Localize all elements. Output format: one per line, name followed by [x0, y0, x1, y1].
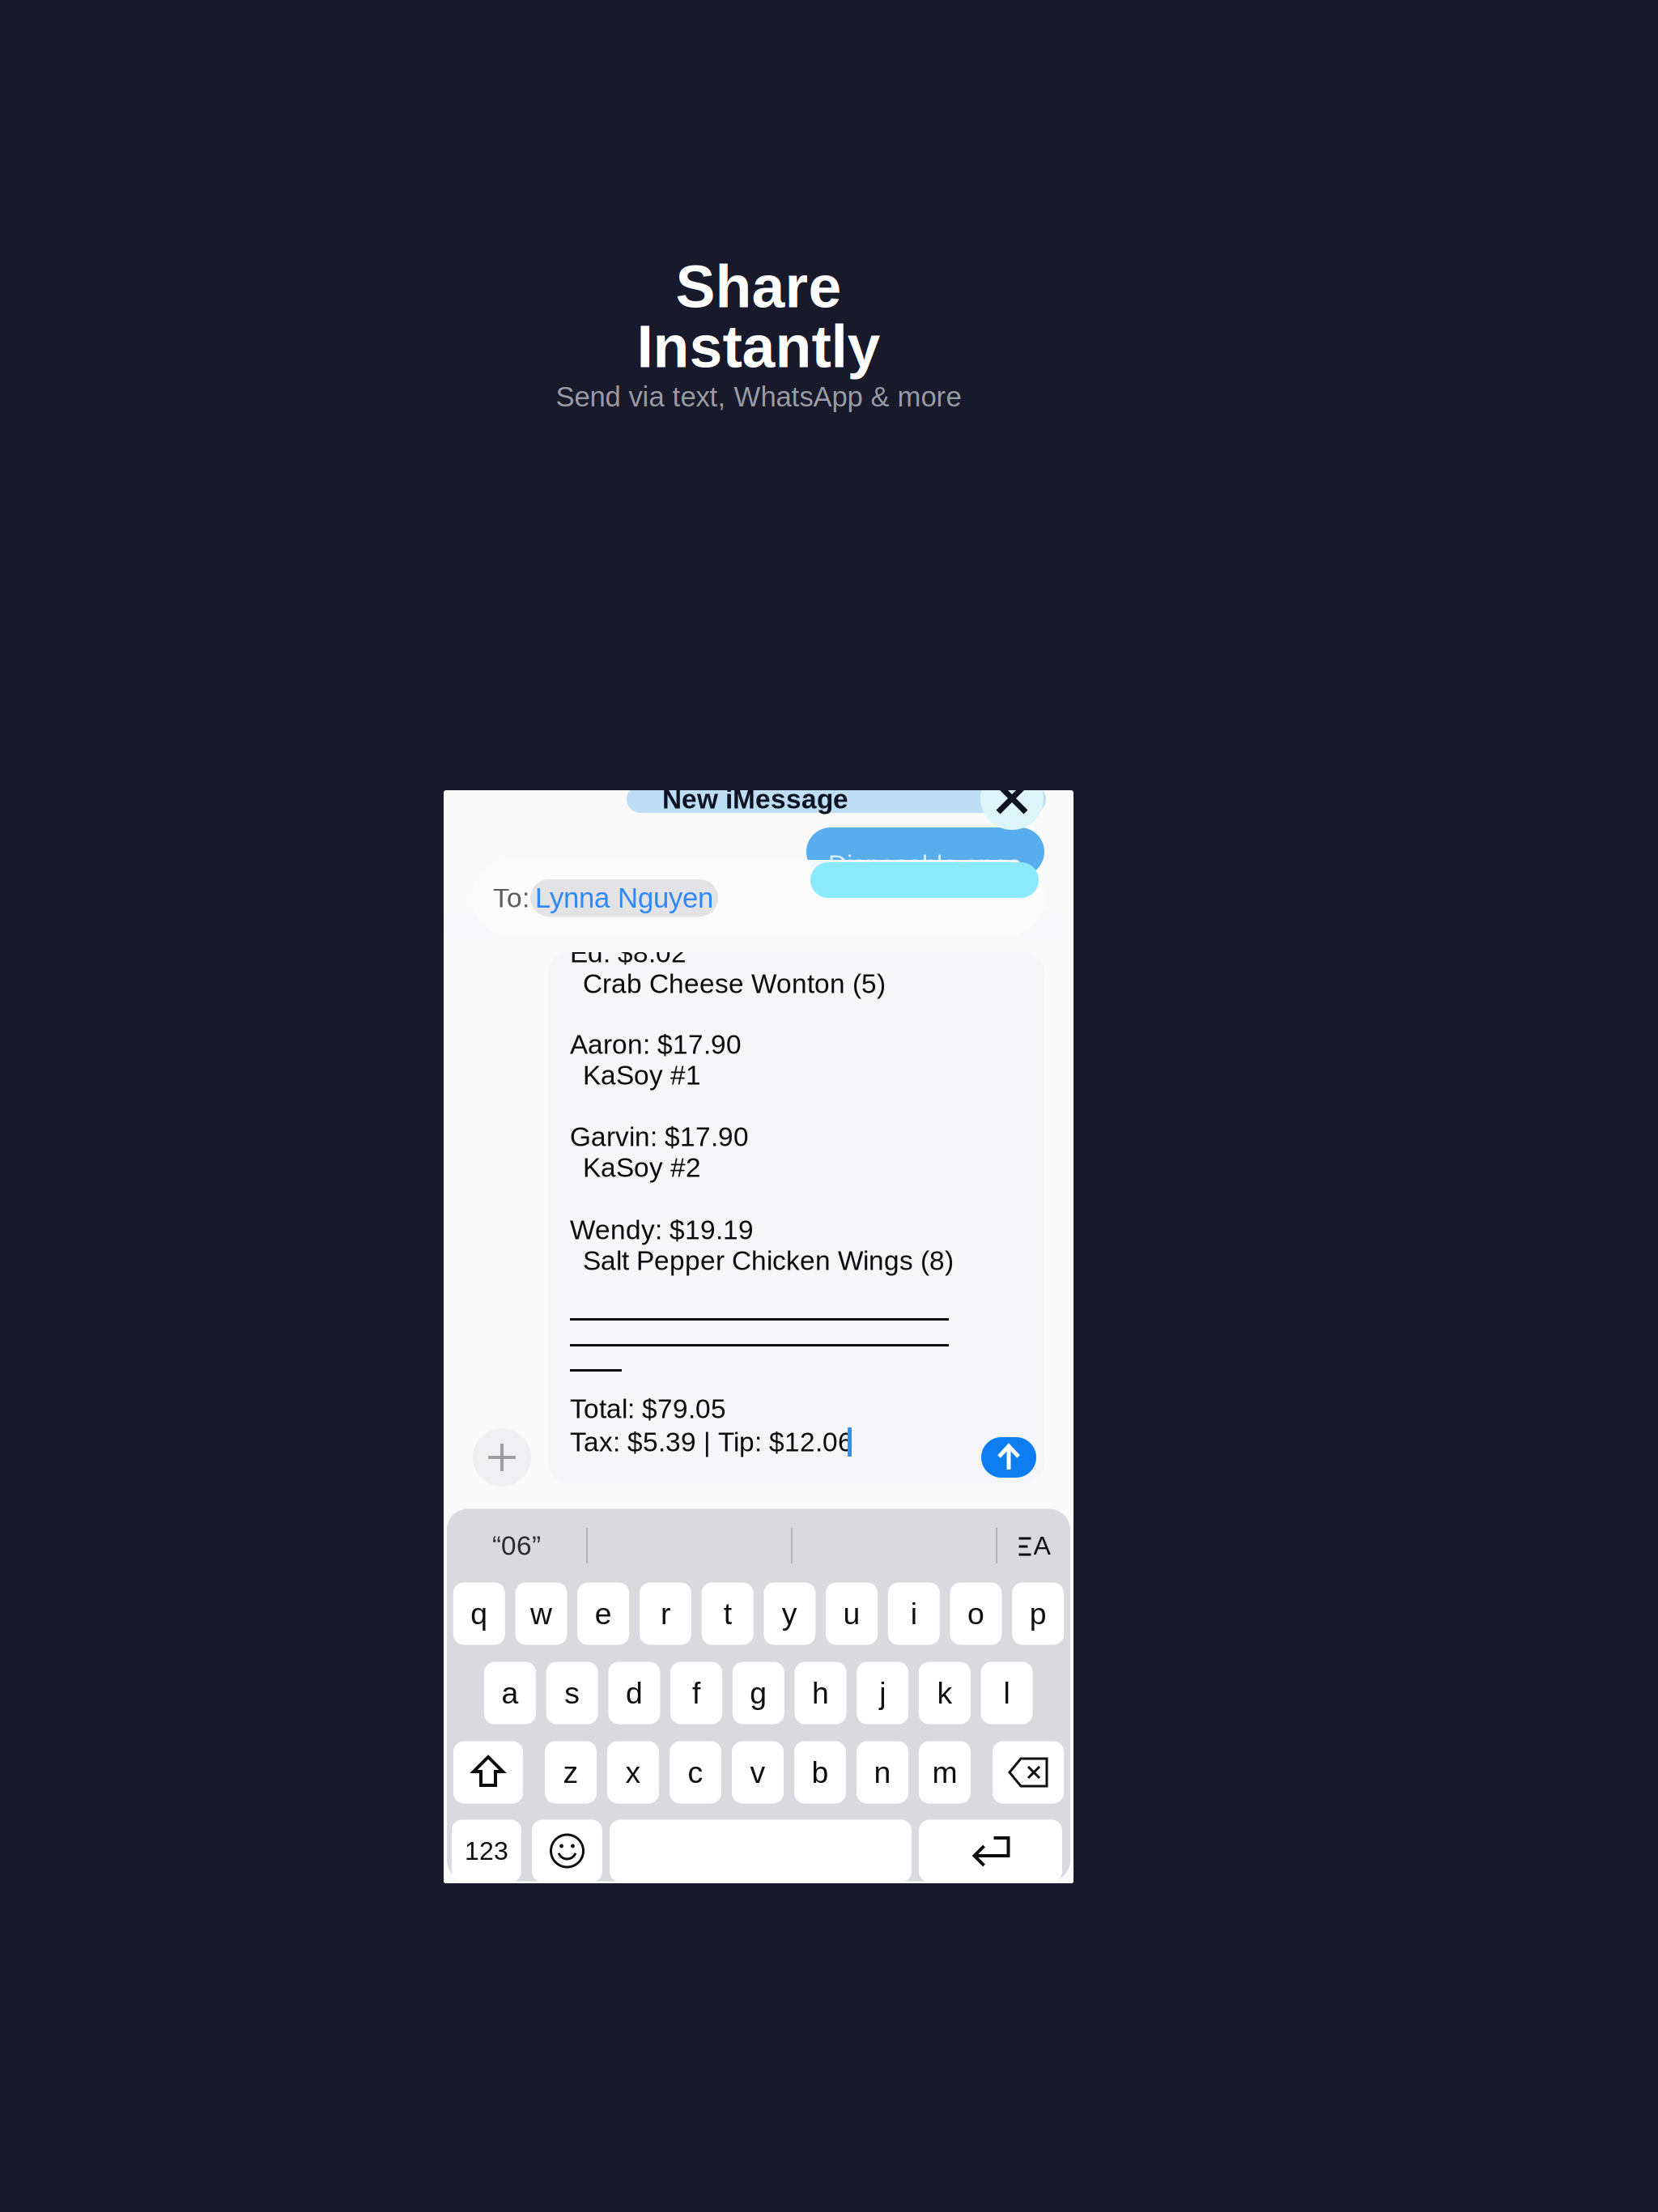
staticText: a — [502, 1676, 519, 1710]
staticText: u — [843, 1597, 860, 1630]
staticText: Aaron: $17.90 — [570, 1029, 742, 1060]
staticText: Wendy: $19.19 — [570, 1215, 754, 1245]
button[interactable]: Return — [919, 1820, 1062, 1882]
staticText: KaSoy #2 — [583, 1152, 701, 1183]
staticText: To: — [493, 883, 529, 913]
staticText: p — [1030, 1597, 1047, 1630]
button[interactable]: w — [515, 1582, 567, 1645]
button[interactable]: o — [950, 1582, 1002, 1645]
staticText: Salt Pepper Chicken Wings (8) — [583, 1246, 954, 1276]
staticText: 123 — [465, 1836, 508, 1865]
button[interactable]: e — [577, 1582, 629, 1645]
button[interactable]: t — [702, 1582, 753, 1645]
staticText: e — [595, 1597, 612, 1630]
staticText: b — [812, 1755, 829, 1789]
staticText: v — [750, 1755, 765, 1789]
staticText: d — [626, 1676, 643, 1710]
staticText: Garvin: $17.90 — [570, 1122, 749, 1152]
staticText: r — [661, 1597, 670, 1630]
button[interactable]: i — [888, 1582, 940, 1645]
staticText: m — [932, 1755, 957, 1789]
button[interactable]: f — [670, 1662, 722, 1724]
staticText: Crab Cheese Wonton (5) — [583, 969, 886, 999]
staticText: k — [937, 1676, 952, 1710]
staticText: h — [812, 1676, 829, 1710]
staticText: x — [625, 1755, 641, 1789]
button[interactable]: x — [607, 1741, 659, 1804]
staticText: j — [879, 1676, 886, 1710]
button[interactable]: c — [670, 1741, 721, 1804]
button[interactable]: l — [981, 1662, 1033, 1724]
staticText: Total: $79.05 — [570, 1394, 726, 1424]
staticText: Disposable ones — [828, 850, 1021, 879]
button[interactable]: Shift — [453, 1741, 523, 1804]
staticText: i — [911, 1597, 917, 1630]
staticText: Send via text, WhatsApp & more — [556, 381, 961, 412]
button[interactable]: b — [794, 1741, 846, 1804]
staticText: g — [750, 1676, 767, 1710]
staticText: New iMessage — [662, 784, 848, 814]
staticText: f — [692, 1676, 700, 1710]
button[interactable]: d — [608, 1662, 660, 1724]
button[interactable]: z — [545, 1741, 597, 1804]
button[interactable]: a — [484, 1662, 536, 1724]
staticText: o — [967, 1597, 984, 1630]
button[interactable]: p — [1012, 1582, 1064, 1645]
button[interactable]: 123 — [452, 1820, 521, 1882]
staticText: c — [688, 1755, 703, 1789]
button[interactable]: s — [546, 1662, 598, 1724]
button[interactable]: j — [857, 1662, 908, 1724]
button[interactable]: h — [795, 1662, 846, 1724]
staticText: z — [563, 1755, 578, 1789]
button[interactable]: m — [919, 1741, 971, 1804]
button[interactable]: n — [857, 1741, 908, 1804]
button[interactable]: u — [826, 1582, 878, 1645]
staticText: Ed: $8.02 — [570, 938, 687, 968]
staticText: y — [782, 1597, 797, 1630]
button[interactable]: g — [732, 1662, 784, 1724]
staticText: l — [1004, 1676, 1010, 1710]
button[interactable]: v — [732, 1741, 784, 1804]
staticText: Lynna Nguyen — [535, 882, 713, 914]
staticText: “06” — [492, 1531, 541, 1561]
button[interactable]: y — [764, 1582, 816, 1645]
staticText: A — [1033, 1531, 1050, 1560]
staticText: s — [564, 1676, 580, 1710]
button[interactable]: Space — [610, 1820, 912, 1882]
staticText: Tax: $5.39 | Tip: $12.06 — [570, 1427, 853, 1457]
staticText: t — [724, 1597, 732, 1630]
staticText: w — [530, 1597, 552, 1630]
button[interactable]: Send — [981, 1437, 1036, 1478]
button[interactable]: Close — [980, 767, 1044, 830]
staticText: KaSoy #1 — [583, 1060, 701, 1090]
staticText: n — [874, 1755, 891, 1789]
button[interactable]: Delete — [993, 1741, 1064, 1804]
button[interactable]: r — [640, 1582, 691, 1645]
staticText: Share — [676, 253, 842, 320]
button[interactable]: k — [919, 1662, 971, 1724]
staticText: Instantly — [637, 313, 880, 380]
staticText: q — [471, 1597, 488, 1630]
button[interactable]: q — [453, 1582, 505, 1645]
button[interactable]: Emoji — [532, 1820, 602, 1882]
button[interactable]: Add attachment — [473, 1428, 531, 1487]
